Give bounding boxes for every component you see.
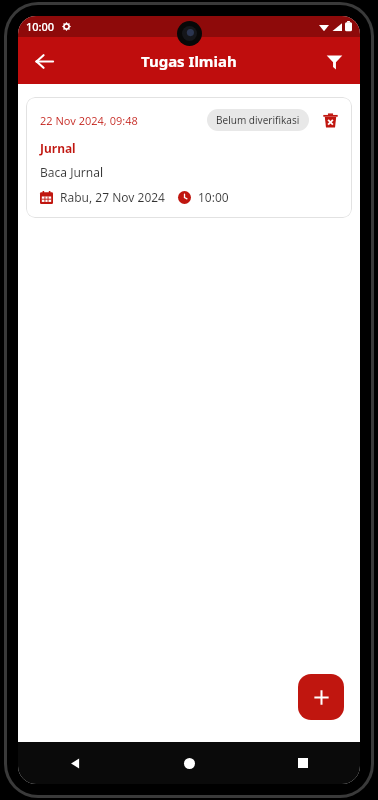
staticText: Jurnal bbox=[40, 140, 76, 156]
staticText: Belum diverifikasi bbox=[216, 113, 300, 127]
button[interactable]: Recent apps bbox=[246, 742, 360, 784]
button[interactable]: Belum diverifikasi bbox=[207, 109, 309, 131]
button[interactable]: Delete bbox=[318, 108, 342, 132]
button[interactable]: Filter bbox=[314, 41, 354, 81]
staticText: 10:00 bbox=[198, 189, 229, 205]
staticText: Tugas Ilmiah bbox=[141, 51, 237, 71]
staticText: 10:00 bbox=[26, 19, 55, 34]
button[interactable]: Back bbox=[18, 742, 132, 784]
button[interactable]: Add bbox=[298, 674, 344, 720]
staticText: 22 Nov 2024, 09:48 bbox=[40, 113, 138, 128]
button[interactable]: 22 Nov 2024, 09:48 bbox=[26, 97, 352, 218]
button[interactable]: Back bbox=[24, 41, 64, 81]
staticText: Rabu, 27 Nov 2024 bbox=[60, 189, 165, 205]
staticText: Baca Jurnal bbox=[40, 164, 104, 180]
button[interactable]: Home bbox=[132, 742, 246, 784]
